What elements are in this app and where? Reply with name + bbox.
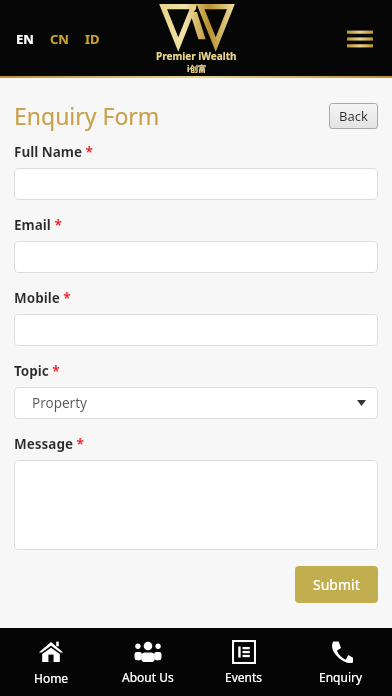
button[interactable]: Submit	[295, 566, 378, 603]
staticText: Home	[34, 670, 69, 686]
staticText: EN	[16, 30, 34, 48]
button[interactable]: Premier iWealth	[156, 4, 237, 75]
button[interactable]: Menu	[340, 19, 380, 59]
button[interactable]: Home	[6, 633, 96, 692]
staticText: Premier iWealth	[156, 49, 237, 63]
button[interactable]: CN	[48, 26, 71, 52]
staticText: Submit	[313, 575, 360, 594]
staticText: Back	[339, 107, 368, 125]
staticText: i创富	[187, 63, 207, 75]
button[interactable]: ID	[83, 26, 102, 52]
staticText: Mobile *	[14, 289, 71, 307]
button[interactable]: Property	[14, 387, 378, 419]
staticText: Topic *	[14, 362, 60, 380]
staticText: Email *	[14, 216, 62, 234]
staticText: Property	[32, 394, 87, 412]
staticText: Events	[225, 669, 263, 685]
staticText: About Us	[122, 669, 174, 685]
button[interactable]: Events	[199, 634, 289, 691]
button[interactable]: Enquiry	[296, 634, 386, 691]
staticText: Full Name *	[14, 143, 93, 161]
button[interactable]: Back	[329, 103, 378, 129]
button[interactable]: About Us	[103, 634, 193, 691]
button[interactable]: EN	[14, 26, 36, 52]
staticText: Enquiry Form	[14, 100, 160, 131]
button[interactable]	[14, 241, 378, 273]
button[interactable]	[14, 314, 378, 346]
button[interactable]	[14, 460, 378, 550]
staticText: Enquiry	[319, 669, 363, 685]
button[interactable]	[14, 168, 378, 200]
staticText: CN	[50, 30, 69, 48]
staticText: Message *	[14, 435, 84, 453]
staticText: ID	[85, 30, 100, 48]
